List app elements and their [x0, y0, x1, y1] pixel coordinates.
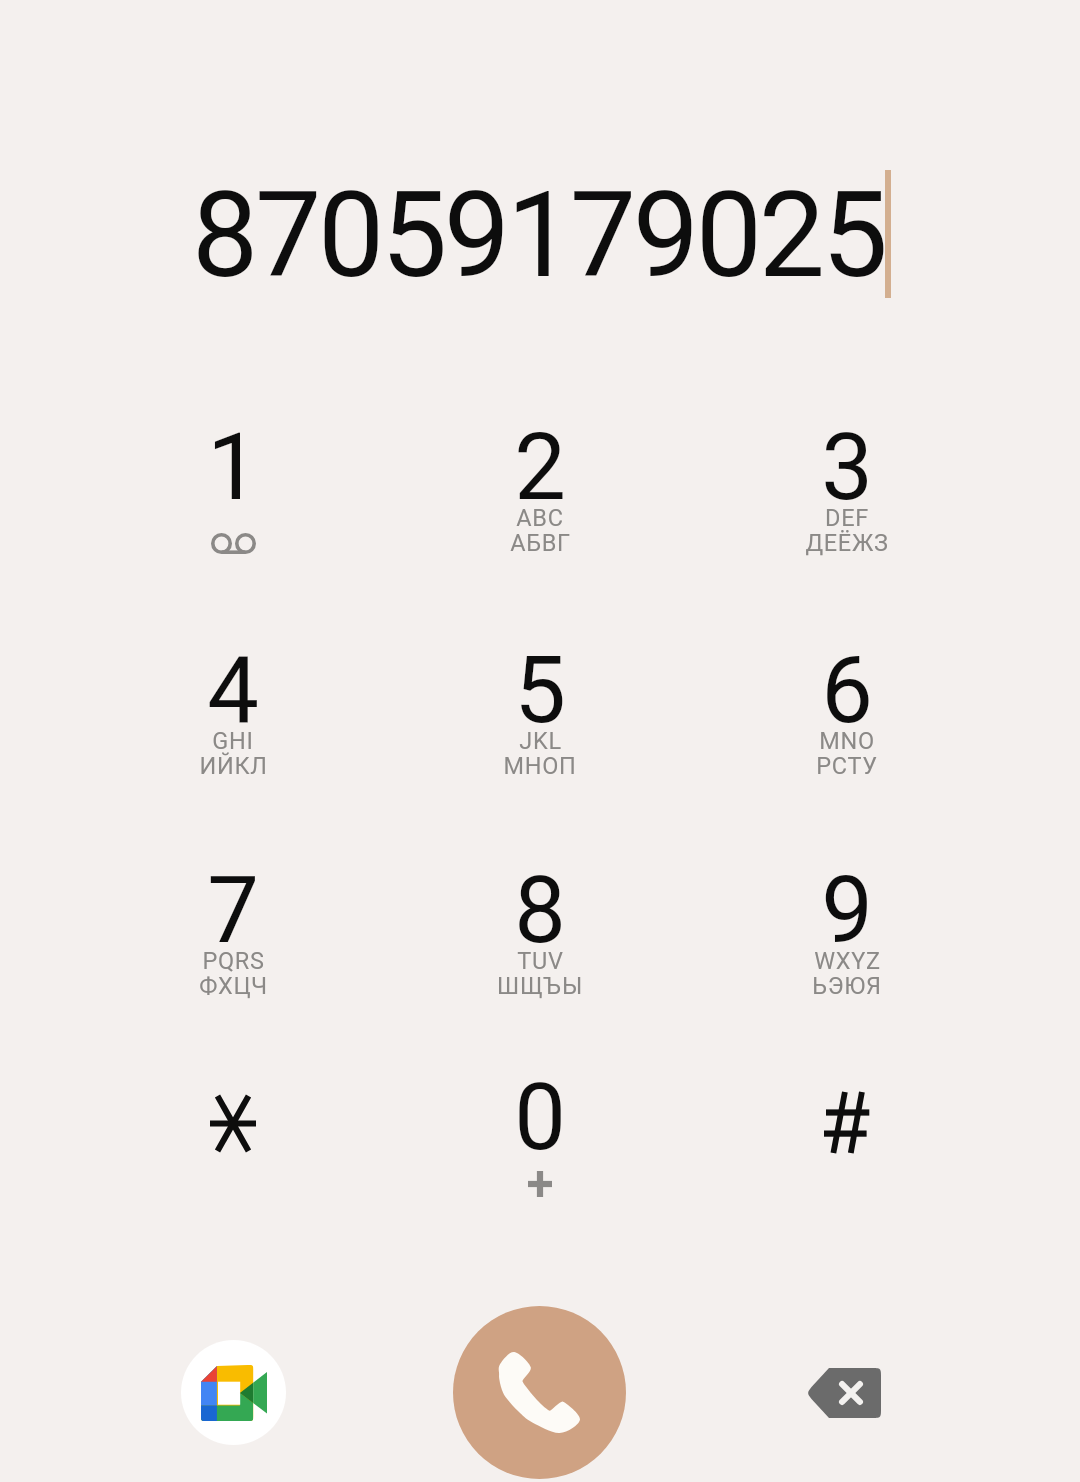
staticText: 0: [514, 1064, 566, 1172]
staticText: ДЕЁЖЗ: [805, 529, 889, 557]
staticText: DEF: [825, 504, 869, 532]
staticText: ШЩЪЫ: [497, 972, 583, 1000]
button[interactable]: [694, 1022, 1000, 1222]
staticText: ИЙКЛ: [199, 752, 268, 780]
staticText: МНОП: [503, 752, 577, 780]
staticText: ЬЭЮЯ: [812, 972, 882, 1000]
staticText: 1: [207, 414, 259, 522]
button[interactable]: 4: [80, 595, 386, 795]
staticText: PQRS: [202, 947, 265, 975]
button[interactable]: Call: [453, 1306, 626, 1479]
staticText: РСТУ: [816, 752, 878, 780]
button[interactable]: [80, 1022, 386, 1222]
staticText: АБВГ: [510, 529, 571, 557]
button[interactable]: 2: [387, 372, 693, 572]
staticText: 6: [821, 637, 873, 745]
staticText: TUV: [517, 947, 564, 975]
staticText: 87059179025: [192, 167, 885, 305]
button[interactable]: 8: [387, 815, 693, 1015]
staticText: GHI: [212, 727, 254, 755]
staticText: 8: [514, 857, 566, 965]
button[interactable]: 0: [387, 1022, 693, 1222]
staticText: 5: [514, 637, 566, 745]
button[interactable]: 3: [694, 372, 1000, 572]
staticText: 7: [207, 857, 259, 965]
staticText: 2: [514, 414, 566, 522]
staticText: MNO: [819, 727, 875, 755]
staticText: WXYZ: [814, 947, 881, 975]
button[interactable]: Backspace: [784, 1342, 904, 1444]
button[interactable]: 9: [694, 815, 1000, 1015]
staticText: 9: [821, 857, 873, 965]
button[interactable]: 6: [694, 595, 1000, 795]
staticText: ABC: [516, 504, 564, 532]
staticText: JKL: [519, 727, 562, 755]
staticText: ФХЦЧ: [199, 972, 268, 1000]
button[interactable]: 1: [80, 372, 386, 572]
button[interactable]: Video call: [181, 1340, 286, 1445]
button[interactable]: 5: [387, 595, 693, 795]
staticText: 4: [207, 637, 259, 745]
staticText: 3: [821, 414, 873, 522]
button[interactable]: 7: [80, 815, 386, 1015]
